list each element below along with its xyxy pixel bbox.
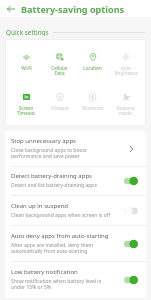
- button[interactable]: Screen Timeout: [9, 93, 43, 116]
- button[interactable]: On: [124, 275, 138, 285]
- staticText: Clean up in suspend: [11, 202, 69, 210]
- staticText: Clean background apps when screen is off: [11, 212, 111, 218]
- button[interactable]: Bluetooth: [76, 93, 109, 111]
- button[interactable]: On: [124, 239, 138, 249]
- staticText: Battery-saving options: [21, 3, 125, 15]
- button[interactable]: Off: [124, 206, 138, 216]
- staticText: Close background apps to boost: [11, 147, 87, 153]
- staticText: Detect battery-draining apps: [11, 172, 92, 180]
- button[interactable]: Low battery notification: [5, 262, 146, 298]
- staticText: Screen Timeout: [17, 105, 35, 116]
- staticText: Hotspot: [51, 105, 69, 111]
- button[interactable]: Auto Brightness: [109, 53, 142, 76]
- staticText: Detect and list battery-draining apps: [11, 182, 97, 188]
- staticText: Bluetooth: [82, 105, 104, 111]
- button[interactable]: Stop unnecessary apps: [5, 131, 146, 166]
- button[interactable]: On: [124, 176, 138, 186]
- staticText: Cellular Data: [51, 65, 68, 76]
- button[interactable]: Hotspot: [43, 93, 76, 111]
- button[interactable]: Detect battery-draining apps: [5, 167, 146, 195]
- staticText: performance and save power: [11, 153, 80, 159]
- button[interactable]: Auto deny apps from auto-starting: [5, 226, 146, 261]
- button[interactable]: Wi-Fi: [9, 53, 43, 71]
- button[interactable]: Clean up in suspend: [5, 196, 146, 225]
- button[interactable]: Back: [0, 0, 21, 17]
- staticText: under 15% or 5%: [11, 284, 52, 290]
- staticText: Location: [83, 65, 102, 71]
- staticText: Stop unnecessary apps: [11, 137, 76, 145]
- button[interactable]: Cellular Data: [43, 53, 76, 76]
- staticText: automatically from auto-starting: [11, 248, 88, 254]
- button[interactable]: Location: [76, 53, 109, 71]
- staticText: Wi-Fi: [21, 65, 32, 71]
- staticText: Quick settings: [6, 28, 49, 36]
- staticText: After apps are installed, deny them: [11, 242, 94, 248]
- button[interactable]: Airplane mode: [109, 93, 142, 116]
- staticText: Airplane mode: [116, 105, 135, 116]
- staticText: Low battery notification: [11, 268, 78, 276]
- button[interactable]: Open: [125, 143, 138, 155]
- staticText: Auto Brightness: [114, 65, 138, 76]
- staticText: Show notification when battery level is: [11, 278, 102, 284]
- staticText: Auto deny apps from auto-starting: [11, 232, 109, 240]
